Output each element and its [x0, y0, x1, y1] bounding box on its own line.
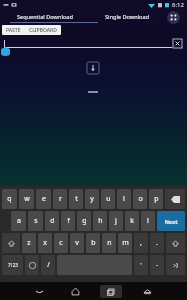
- button[interactable]: x: [38, 233, 52, 253]
- button[interactable]: c: [54, 233, 68, 253]
- button[interactable]: d: [45, 211, 59, 231]
- button[interactable]: [4, 40, 172, 48]
- staticText: :-): [173, 262, 178, 268]
- staticText: w: [24, 194, 30, 204]
- button[interactable]: y: [85, 189, 99, 209]
- button[interactable]: j: [109, 211, 123, 231]
- button[interactable]: [25, 255, 39, 275]
- staticText: a: [17, 216, 21, 226]
- button[interactable]: Back: [21, 282, 57, 300]
- staticText: p: [154, 194, 159, 204]
- button[interactable]: n: [102, 233, 116, 253]
- button[interactable]: t: [69, 189, 83, 209]
- button[interactable]: .: [150, 233, 164, 253]
- staticText: g: [82, 216, 87, 226]
- staticText: u: [106, 194, 111, 204]
- button[interactable]: [165, 189, 185, 209]
- staticText: i: [123, 194, 125, 204]
- button[interactable]: Recents: [93, 282, 129, 300]
- staticText: s: [34, 216, 38, 226]
- staticText: -: [156, 261, 158, 269]
- button[interactable]: ?123: [2, 255, 23, 275]
- button[interactable]: Clear: [172, 38, 183, 49]
- button[interactable]: v: [70, 233, 84, 253]
- staticText: CLIPBOARD: [29, 27, 57, 34]
- staticText: 6:12: [172, 1, 184, 9]
- button[interactable]: Single Download: [89, 11, 165, 23]
- button[interactable]: g: [77, 211, 91, 231]
- button[interactable]: Keyboard: [129, 282, 165, 300]
- button[interactable]: PASTE: [2, 25, 25, 35]
- button[interactable]: CLIPBOARD: [25, 25, 61, 35]
- button[interactable]: Download: [86, 61, 100, 75]
- button[interactable]: u: [101, 189, 115, 209]
- button[interactable]: s: [28, 211, 43, 231]
- button[interactable]: m: [118, 233, 132, 253]
- button[interactable]: [166, 233, 185, 253]
- staticText: .: [156, 238, 158, 248]
- staticText: /: [47, 260, 50, 270]
- staticText: Next: [164, 218, 178, 225]
- button[interactable]: f: [61, 211, 75, 231]
- staticText: d: [50, 216, 55, 226]
- button[interactable]: ': [134, 255, 148, 275]
- staticText: h: [98, 216, 103, 226]
- button[interactable]: l: [141, 211, 155, 231]
- staticText: n: [107, 238, 112, 248]
- button[interactable]: k: [125, 211, 139, 231]
- button[interactable]: [2, 233, 20, 253]
- staticText: q: [7, 194, 12, 204]
- staticText: PASTE: [6, 27, 21, 34]
- button[interactable]: z: [22, 233, 36, 253]
- button[interactable]: i: [117, 189, 131, 209]
- button[interactable]: q: [2, 189, 17, 209]
- staticText: b: [91, 238, 96, 248]
- button[interactable]: /: [41, 255, 55, 275]
- button[interactable]: w: [19, 189, 34, 209]
- staticText: ,: [140, 238, 142, 248]
- staticText: Sequential Download: [17, 13, 73, 21]
- staticText: m: [122, 238, 129, 248]
- staticText: j: [115, 216, 117, 226]
- button[interactable]: Home: [57, 282, 93, 300]
- staticText: o: [138, 194, 143, 204]
- staticText: k: [130, 216, 134, 226]
- staticText: ?123: [8, 262, 18, 268]
- button[interactable]: -: [150, 255, 164, 275]
- button[interactable]: r: [53, 189, 67, 209]
- button[interactable]: b: [86, 233, 100, 253]
- staticText: f: [67, 216, 70, 226]
- button[interactable]: p: [149, 189, 163, 209]
- staticText: e: [42, 194, 46, 204]
- button[interactable]: ,: [134, 233, 148, 253]
- staticText: v: [75, 238, 79, 248]
- button[interactable]: :-): [166, 255, 185, 275]
- button[interactable]: e: [36, 189, 51, 209]
- staticText: y: [90, 194, 94, 204]
- staticText: l: [147, 216, 149, 226]
- staticText: r: [59, 194, 62, 204]
- staticText: t: [75, 194, 78, 204]
- button[interactable]: Sequential Download: [0, 11, 89, 23]
- button[interactable]: Menu: [166, 10, 181, 25]
- button[interactable]: o: [133, 189, 147, 209]
- button[interactable]: a: [11, 211, 26, 231]
- staticText: ': [140, 261, 142, 269]
- staticText: z: [27, 238, 31, 248]
- button[interactable]: h: [93, 211, 107, 231]
- staticText: Single Download: [105, 13, 150, 21]
- staticText: x: [43, 238, 47, 248]
- staticText: c: [59, 238, 63, 248]
- button[interactable]: Next: [157, 211, 185, 231]
